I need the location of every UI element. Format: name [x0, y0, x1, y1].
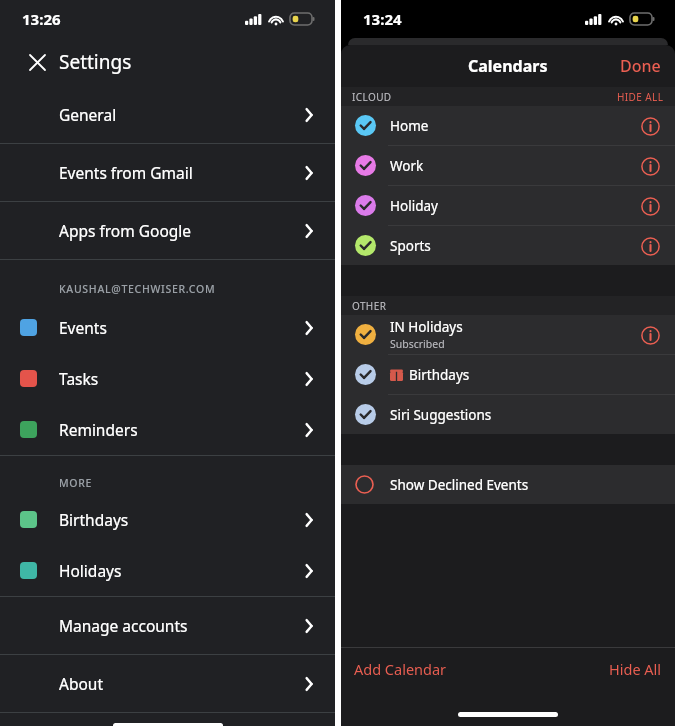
staticText: Events from Gmail — [59, 162, 301, 183]
button[interactable]: Home — [341, 106, 675, 145]
button[interactable]: Info — [635, 191, 665, 221]
button[interactable]: Reminders — [0, 404, 335, 455]
button[interactable]: Events — [0, 302, 335, 353]
button[interactable]: Hide All — [601, 651, 675, 687]
button[interactable]: Tasks — [0, 353, 335, 404]
staticText: Home — [390, 117, 429, 135]
staticText: Birthdays — [409, 366, 470, 384]
staticText: Birthdays — [59, 509, 301, 530]
staticText: 13:24 — [363, 9, 402, 29]
button[interactable]: Holiday — [341, 186, 675, 225]
staticText: Manage accounts — [59, 615, 301, 636]
button[interactable]: Holidays — [0, 545, 335, 596]
staticText: Reminders — [59, 419, 301, 440]
button[interactable]: Close — [20, 45, 54, 79]
button[interactable]: Work — [341, 146, 675, 185]
button[interactable]: HIDE ALL — [617, 90, 664, 104]
button[interactable]: About — [0, 655, 335, 712]
staticText: Hide All — [609, 659, 662, 679]
staticText: Sports — [390, 237, 431, 255]
staticText: Done — [620, 55, 661, 77]
button[interactable]: Add Calendar — [341, 651, 455, 687]
button[interactable]: Info — [635, 111, 665, 141]
staticText: Tasks — [59, 368, 301, 389]
staticText: IN Holidays — [390, 318, 463, 336]
staticText: General — [59, 104, 301, 125]
button[interactable]: Birthdays — [341, 355, 675, 394]
button[interactable]: Siri Suggestions — [341, 395, 675, 434]
staticText: ICLOUD — [352, 90, 392, 104]
staticText: Show Declined Events — [390, 476, 529, 494]
staticText: Holiday — [390, 197, 438, 215]
staticText: Subscribed — [390, 337, 445, 351]
button[interactable]: Info — [635, 151, 665, 181]
staticText: Holidays — [59, 560, 301, 581]
button[interactable]: Info — [635, 320, 665, 350]
button[interactable]: Sports — [341, 226, 675, 265]
button[interactable]: Birthdays — [0, 494, 335, 545]
staticText: Work — [390, 157, 424, 175]
button[interactable]: Manage accounts — [0, 597, 335, 654]
staticText: 13:26 — [22, 9, 61, 29]
button[interactable]: Show Declined Events — [341, 465, 675, 504]
button[interactable]: IN Holidays — [341, 315, 675, 354]
staticText: Apps from Google — [59, 220, 301, 241]
staticText: Calendars — [468, 55, 548, 77]
button[interactable]: Done — [606, 49, 675, 83]
button[interactable]: Apps from Google — [0, 202, 335, 259]
staticText: About — [59, 673, 301, 694]
staticText: MORE — [59, 476, 93, 490]
staticText: HIDE ALL — [617, 90, 664, 104]
button[interactable]: General — [0, 86, 335, 143]
staticText: Settings — [59, 49, 132, 75]
staticText: KAUSHAL@TECHWISER.COM — [59, 282, 216, 296]
button[interactable]: Events from Gmail — [0, 144, 335, 201]
button[interactable]: Info — [635, 231, 665, 261]
staticText: Add Calendar — [354, 659, 447, 679]
staticText: Events — [59, 317, 301, 338]
staticText: OTHER — [352, 299, 387, 313]
staticText: Siri Suggestions — [390, 406, 492, 424]
